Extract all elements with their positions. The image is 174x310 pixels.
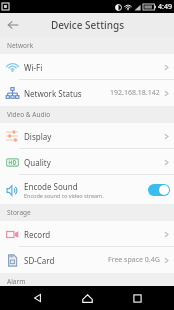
staticText: Free space 0.4G (108, 255, 160, 265)
button[interactable]: Encode Sound (0, 175, 174, 204)
button[interactable]: Quality (0, 149, 174, 175)
staticText: 4:49 (158, 2, 172, 12)
button[interactable]: Home (75, 286, 99, 310)
button[interactable]: Network Status (0, 80, 174, 106)
staticText: 192.168.18.142 (110, 88, 160, 98)
staticText: Record (24, 229, 51, 240)
staticText: Encode Sound (24, 181, 78, 192)
button[interactable]: SD-Card (0, 247, 174, 273)
staticText: Wi-Fi (24, 62, 43, 73)
button[interactable]: Record (0, 221, 174, 247)
button[interactable]: Wi-Fi (0, 54, 174, 80)
staticText: Network (7, 41, 34, 50)
button[interactable]: Display (0, 123, 174, 149)
button[interactable]: Back (26, 286, 50, 310)
staticText: Device Settings (51, 18, 124, 32)
staticText: Video & Audio (7, 110, 51, 119)
staticText: Display (24, 131, 52, 142)
staticText: Storage (7, 208, 31, 217)
staticText: Network Status (24, 88, 82, 99)
staticText: Quality (24, 157, 51, 168)
button[interactable]: Back (3, 15, 23, 35)
staticText: Alarm (7, 277, 26, 286)
staticText: Encode sound to video stream. (24, 192, 104, 199)
staticText: SD-Card (24, 255, 55, 266)
button[interactable]: Recents (125, 286, 149, 310)
button[interactable]: Encode Sound (148, 184, 170, 196)
